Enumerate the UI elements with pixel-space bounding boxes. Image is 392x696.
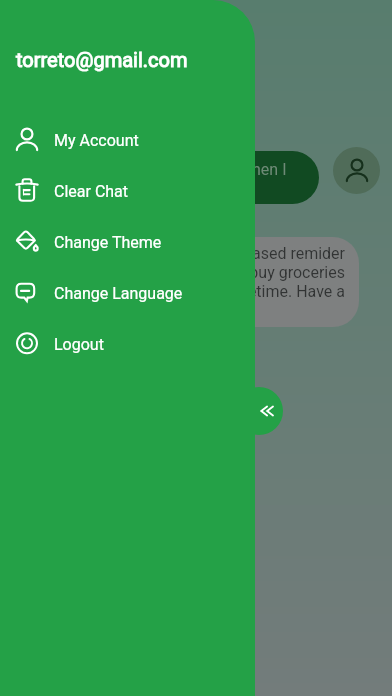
- staticText: when I: [240, 160, 287, 179]
- staticText: Clear Chat: [54, 182, 129, 201]
- button[interactable]: Logout: [0, 317, 255, 368]
- staticText: My Account: [54, 131, 139, 150]
- staticText: Logout: [54, 335, 104, 354]
- staticText: torreto@gmail.com: [16, 48, 188, 71]
- staticText: to buy groceries: [110, 263, 345, 282]
- button[interactable]: A location based remider: [110, 237, 359, 327]
- button[interactable]: Profile: [333, 147, 380, 194]
- staticText: Change Theme: [54, 233, 162, 252]
- button[interactable]: when I: [140, 151, 319, 204]
- button[interactable]: Change Theme: [0, 215, 255, 266]
- button[interactable]: Close menu: [235, 387, 283, 435]
- staticText: Change Language: [54, 284, 183, 303]
- staticText: sometime. Have a: [110, 282, 345, 301]
- button[interactable]: Change Language: [0, 266, 255, 317]
- button[interactable]: My Account: [0, 113, 255, 164]
- button[interactable]: Clear Chat: [0, 164, 255, 215]
- staticText: A location based remider: [110, 244, 345, 263]
